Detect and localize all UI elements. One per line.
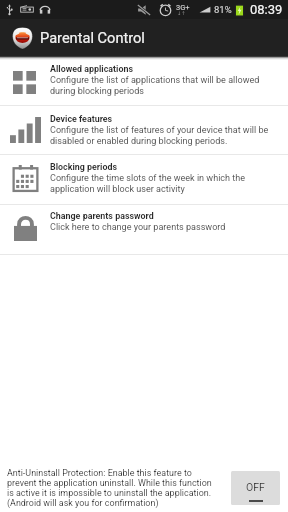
- staticText: 08:39: [250, 2, 283, 17]
- button[interactable]: Blocking periods: [0, 155, 288, 204]
- staticText: Change parents password: [50, 211, 154, 221]
- staticText: Blocking periods: [50, 162, 118, 172]
- staticText: OFF: [246, 481, 265, 493]
- staticText: 81%: [214, 4, 232, 15]
- button[interactable]: OFF: [231, 471, 280, 505]
- staticText: 3G+: [176, 3, 190, 12]
- staticText: Parental Control: [40, 29, 145, 46]
- staticText: ↓↑: [177, 10, 186, 16]
- staticText: Device features: [50, 114, 113, 124]
- staticText: Configure the list of applications that …: [50, 75, 260, 97]
- button[interactable]: Allowed applications: [0, 56, 288, 105]
- staticText: Allowed applications: [50, 64, 134, 74]
- staticText: Anti-Uninstall Protection: Enable this f…: [7, 468, 225, 508]
- staticText: Configure the time slots of the week in …: [50, 173, 246, 195]
- staticText: Configure the list of features of your d…: [50, 125, 269, 147]
- button[interactable]: Device features: [0, 106, 288, 154]
- staticText: Click here to change your parents passwo…: [50, 222, 226, 233]
- button[interactable]: Change parents password: [0, 205, 288, 254]
